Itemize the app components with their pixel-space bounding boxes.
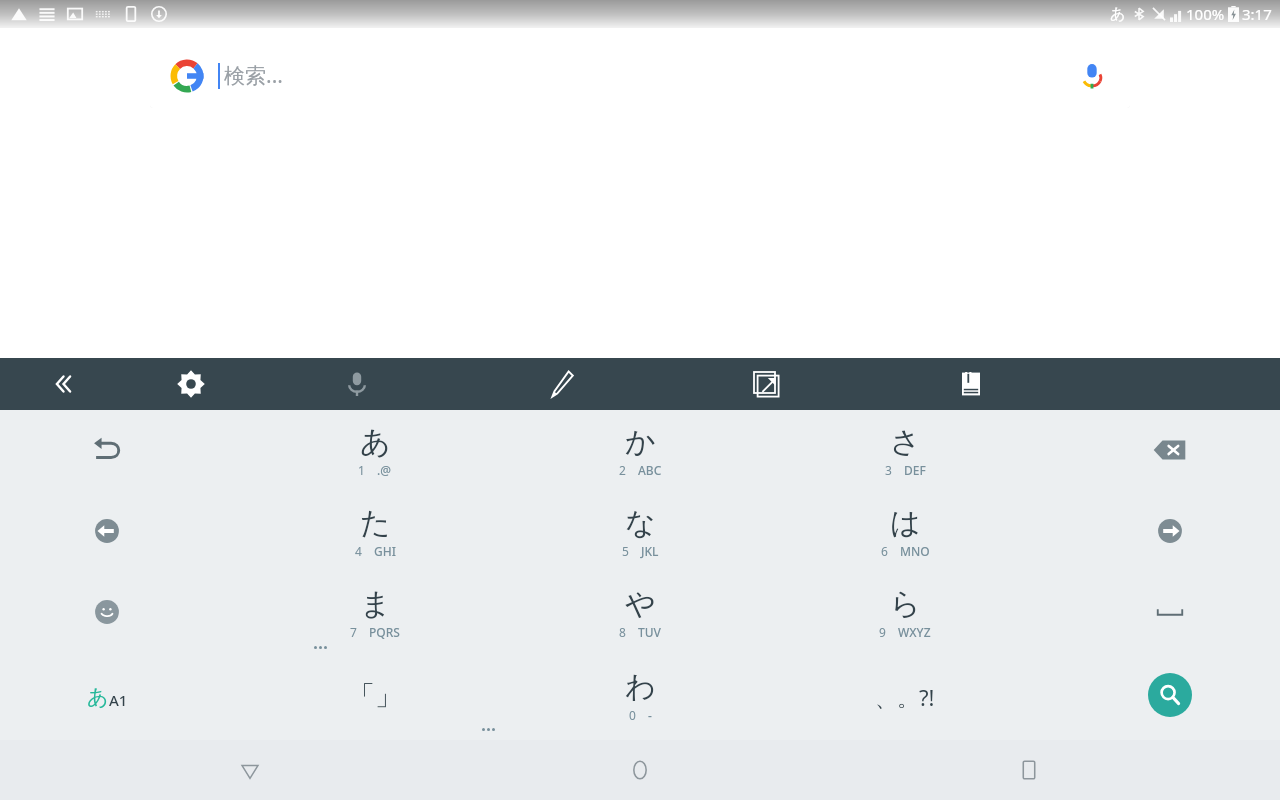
staticText: あ [87,684,109,710]
staticText: TUV [638,624,661,640]
button[interactable]: さ [830,411,980,489]
button[interactable]: Recent apps [999,740,1059,800]
staticText: WXYZ [898,624,931,640]
staticText: 9 [879,624,886,640]
button[interactable]: Voice input [331,358,383,410]
button[interactable]: ま [300,573,450,651]
button[interactable]: Clipboard [945,358,997,410]
button[interactable]: は [830,492,980,570]
button[interactable]: 「」 [315,671,435,721]
staticText: さ [890,423,921,461]
staticText: 1 [358,462,365,478]
staticText: GHI [374,543,396,559]
button[interactable]: あ [47,673,167,721]
staticText: 検索... [224,61,283,90]
button[interactable]: 、。?! [845,673,965,721]
button[interactable]: Home [610,740,670,800]
button[interactable]: Floating keyboard [740,358,792,410]
button[interactable]: Cursor right [1095,492,1245,570]
button[interactable]: ら [830,573,980,651]
staticText: 3 [885,462,892,478]
staticText: た [360,504,391,542]
staticText: 3:17 [1242,4,1272,24]
button[interactable]: Search [1130,655,1210,735]
staticText: 8 [619,624,626,640]
staticText: か [625,423,656,461]
staticText: PQRS [369,624,400,640]
staticText: - [648,707,652,723]
button[interactable]: Emoji [32,573,182,651]
staticText: DEF [904,462,926,478]
staticText: JKL [641,543,659,559]
button[interactable]: Undo [32,411,182,489]
button[interactable]: Backspace [1095,411,1245,489]
staticText: や [625,585,656,623]
button[interactable]: 検索... [150,43,1130,108]
staticText: な [625,504,656,542]
staticText: ま [360,585,391,623]
button[interactable]: Back [220,740,280,800]
button[interactable]: か [565,411,715,489]
staticText: .@ [377,462,392,478]
staticText: ABC [638,462,662,478]
staticText: あ [360,423,391,461]
staticText: あ [1110,5,1126,24]
button[interactable]: た [300,492,450,570]
button[interactable]: Settings [165,358,217,410]
button[interactable]: Space [1095,573,1245,651]
staticText: MNO [900,543,930,559]
staticText: 4 [355,543,362,559]
staticText: A1 [109,690,128,710]
staticText: は [890,504,921,542]
button[interactable]: Voice search [1066,50,1118,102]
staticText: 5 [622,543,629,559]
staticText: 、。?! [875,682,935,712]
staticText: 6 [881,543,888,559]
button[interactable]: Handwriting [536,358,588,410]
button[interactable]: な [565,492,715,570]
staticText: わ [625,668,656,706]
button[interactable]: Cursor left [32,492,182,570]
staticText: 100% [1186,4,1225,24]
button[interactable]: あ [300,411,450,489]
staticText: 7 [350,624,357,640]
staticText: ら [890,585,921,623]
staticText: 0 [629,707,636,723]
button[interactable]: や [565,573,715,651]
staticText: 「」 [348,679,402,713]
button[interactable]: Collapse [36,358,88,410]
button[interactable]: わ [565,656,715,734]
staticText: 2 [619,462,626,478]
